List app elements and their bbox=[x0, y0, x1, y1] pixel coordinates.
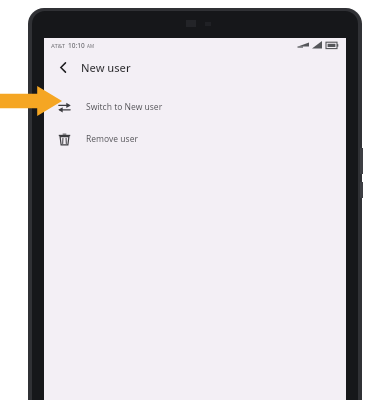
button[interactable]: Switch to New user bbox=[44, 91, 346, 123]
button[interactable]: Back bbox=[52, 56, 74, 78]
staticText: 10:10 bbox=[68, 41, 85, 50]
staticText: Switch to New user bbox=[86, 101, 163, 113]
staticText: AT&T bbox=[51, 42, 65, 50]
staticText: AM bbox=[87, 43, 94, 49]
staticText: Remove user bbox=[86, 133, 138, 145]
staticText: New user bbox=[81, 60, 131, 75]
button[interactable]: Remove user bbox=[44, 123, 346, 155]
